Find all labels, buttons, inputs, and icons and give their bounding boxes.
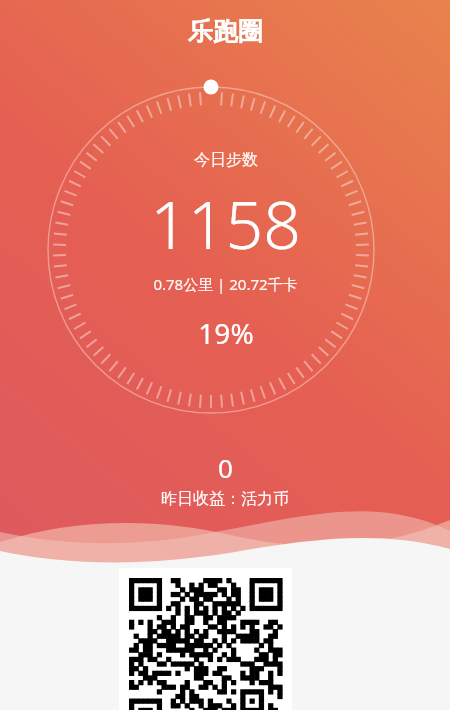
staticText: 乐跑圈 [188, 16, 263, 47]
staticText: 昨日收益：活力币 [161, 489, 289, 509]
staticText: 19% [198, 314, 254, 352]
button[interactable]: QR code [119, 568, 292, 710]
staticText: 今日步数 [194, 150, 258, 170]
staticText: 0.78公里 | 20.72千卡 [153, 274, 298, 294]
staticText: 1158 [150, 178, 301, 268]
staticText: 0 [218, 450, 233, 485]
button[interactable]: 0 [161, 450, 289, 509]
